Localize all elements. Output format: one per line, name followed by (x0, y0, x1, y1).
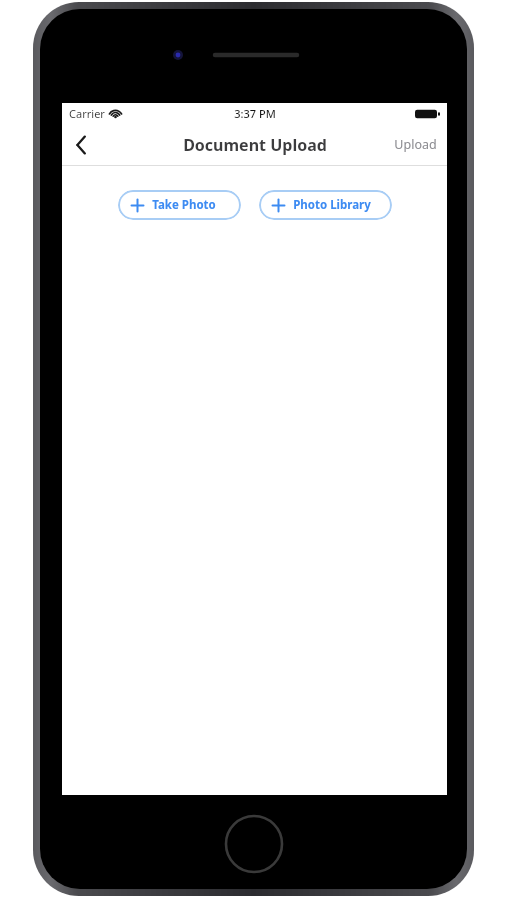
button[interactable]: Photo Library (259, 190, 392, 220)
other: Home (224, 814, 284, 874)
staticText: Document Upload (183, 134, 327, 156)
staticText: 3:37 PM (234, 106, 276, 121)
button[interactable]: Back (62, 124, 100, 165)
staticText: Photo Library (293, 197, 371, 213)
button[interactable]: Take Photo (118, 190, 241, 220)
button[interactable]: Upload (384, 128, 447, 161)
staticText: Take Photo (152, 197, 216, 213)
staticText: Carrier (69, 106, 105, 121)
staticText: Upload (394, 136, 437, 153)
